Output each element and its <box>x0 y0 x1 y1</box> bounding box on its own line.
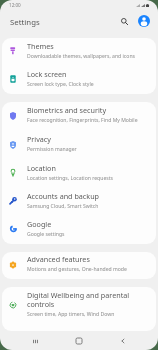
staticText: Motions and gestures, One-handed mode <box>27 266 127 273</box>
staticText: Digital Wellbeing and parental controls <box>27 290 152 309</box>
button[interactable]: Digital Wellbeing and parental controls <box>2 287 156 331</box>
staticText: Biometrics and security <box>27 105 107 115</box>
staticText: Accounts and backup <box>27 191 99 201</box>
button[interactable]: Home <box>70 332 88 350</box>
staticText: Downloadable themes, wallpapers, and ico… <box>27 53 135 60</box>
staticText: Location <box>27 163 56 173</box>
staticText: Advanced features <box>27 254 90 264</box>
button[interactable]: Google <box>2 216 156 244</box>
button[interactable]: Advanced features <box>2 252 156 279</box>
staticText: Permission manager <box>27 146 77 153</box>
button[interactable]: Search <box>116 13 132 29</box>
button[interactable]: Privacy <box>2 131 156 160</box>
button[interactable]: Lock screen <box>2 66 156 94</box>
staticText: Settings <box>10 17 40 28</box>
staticText: Lock screen <box>27 69 67 79</box>
staticText: Screen time, App timers, Wind Down <box>27 311 115 318</box>
button[interactable]: Accounts and backup <box>2 188 156 216</box>
staticText: Screen lock type, Clock style <box>27 81 94 88</box>
button[interactable]: Location <box>2 160 156 188</box>
staticText: Privacy <box>27 134 51 144</box>
button[interactable]: Themes <box>2 38 156 66</box>
staticText: Themes <box>27 41 54 51</box>
button[interactable]: Account <box>136 13 152 29</box>
staticText: Google settings <box>27 231 65 238</box>
staticText: 12:00 <box>9 2 21 8</box>
staticText: Google <box>27 219 52 229</box>
button[interactable]: Back <box>114 332 132 350</box>
button[interactable]: Recent apps <box>26 332 44 350</box>
staticText: Location settings, Location requests <box>27 175 113 182</box>
staticText: Face recognition, Fingerprints, Find My … <box>27 117 138 124</box>
staticText: Samsung Cloud, Smart Switch <box>27 203 99 210</box>
button[interactable]: Biometrics and security <box>2 102 156 131</box>
